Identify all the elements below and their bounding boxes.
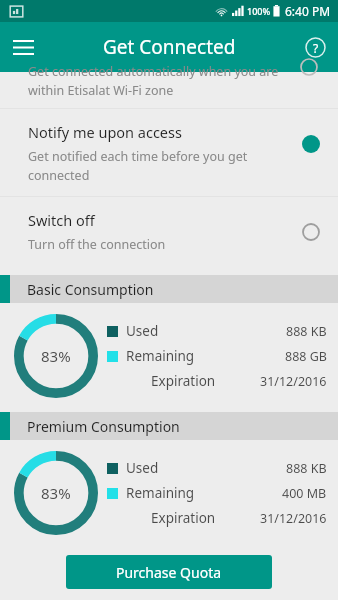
staticText: Remaining xyxy=(126,347,285,365)
staticText: 888 KB xyxy=(286,460,327,477)
staticText: Get connected automatically when you are… xyxy=(28,63,279,99)
staticText: Basic Consumption xyxy=(27,280,154,299)
staticText: ? xyxy=(313,40,319,56)
staticText: 83% xyxy=(41,483,71,503)
button[interactable]: Basic Consumption xyxy=(0,275,338,303)
button[interactable]: Switch off xyxy=(0,197,338,265)
staticText: Purchase Quota xyxy=(116,563,222,582)
staticText: Switch off xyxy=(28,210,95,230)
button[interactable]: Get connected automatically when you are… xyxy=(0,72,338,108)
staticText: 888 GB xyxy=(285,348,327,365)
staticText: Used xyxy=(126,322,286,340)
button[interactable]: Purchase Quota xyxy=(66,555,272,589)
staticText: Get notified each time before you get co… xyxy=(28,148,248,184)
staticText: 83% xyxy=(41,346,71,366)
staticText: Notify me upon access xyxy=(28,122,182,142)
staticText: Used xyxy=(126,459,286,477)
staticText: 31/12/2016 xyxy=(260,510,327,527)
staticText: 100% xyxy=(247,5,271,17)
staticText: Premium Consumption xyxy=(27,417,180,436)
staticText: 888 KB xyxy=(286,323,327,340)
staticText: 6:40 PM xyxy=(285,3,331,19)
button[interactable]: Notify me upon access xyxy=(0,109,338,196)
staticText: Expiration xyxy=(151,372,216,390)
button[interactable]: Help xyxy=(292,24,338,70)
button[interactable]: Premium Consumption xyxy=(0,412,338,440)
staticText: 31/12/2016 xyxy=(260,373,327,390)
staticText: Get Connected xyxy=(103,34,236,60)
button[interactable]: Open navigation menu xyxy=(0,24,46,70)
staticText: Turn off the connection xyxy=(28,236,166,253)
staticText: Remaining xyxy=(126,484,282,502)
staticText: 400 MB xyxy=(282,485,327,502)
staticText: Expiration xyxy=(151,509,216,527)
